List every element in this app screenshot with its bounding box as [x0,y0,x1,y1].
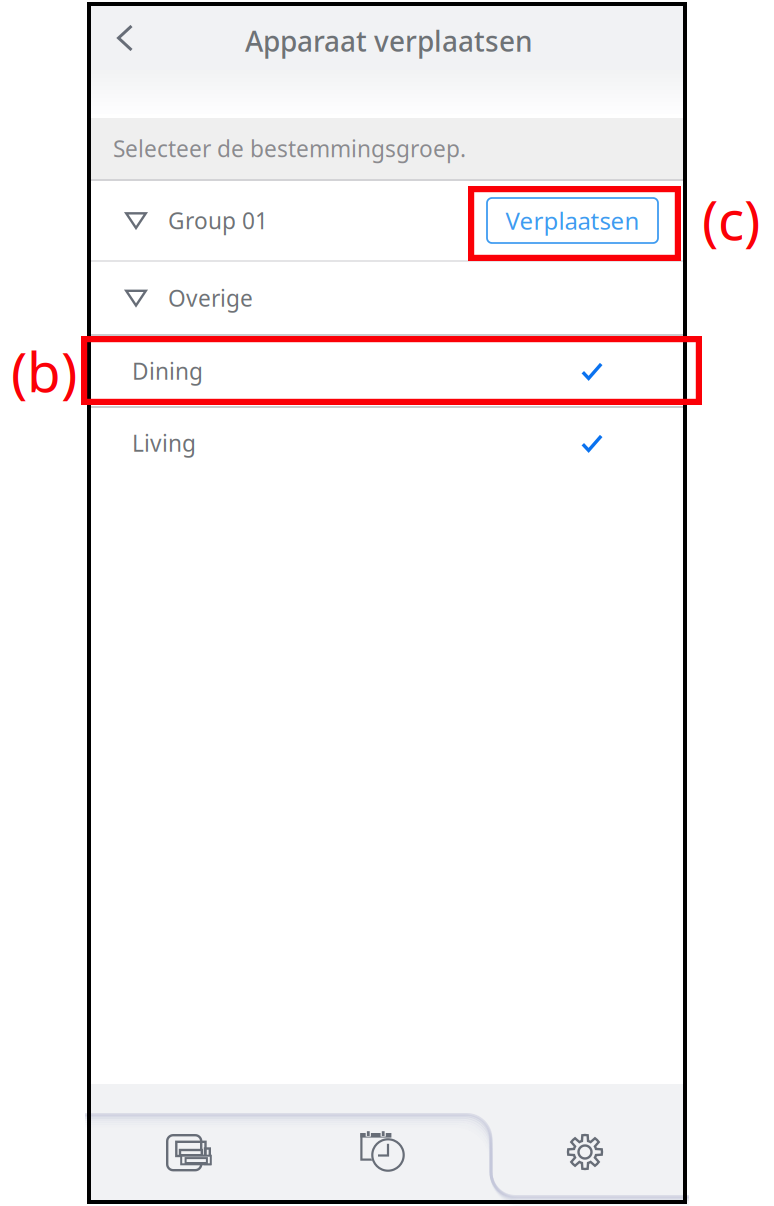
button[interactable]: Devices [89,1093,287,1206]
staticText: (c) [702,183,760,255]
button[interactable]: Dining [89,336,685,406]
staticText: Selecteer de bestemmingsgroep. [113,133,466,163]
button[interactable]: Settings [485,1093,685,1206]
staticText: Dining [132,356,203,386]
staticText: (b) [11,335,77,407]
button[interactable]: Back [89,2,161,74]
staticText: Verplaatsen [505,205,639,236]
staticText: Group 01 [168,205,268,235]
button[interactable]: Living [89,408,685,478]
staticText: Overige [168,283,253,313]
button[interactable]: Schedule [287,1093,485,1206]
button[interactable]: Group 01 [89,181,685,260]
button[interactable]: Overige [89,262,685,334]
staticText: Living [132,428,196,458]
staticText: Apparaat verplaatsen [245,22,533,60]
